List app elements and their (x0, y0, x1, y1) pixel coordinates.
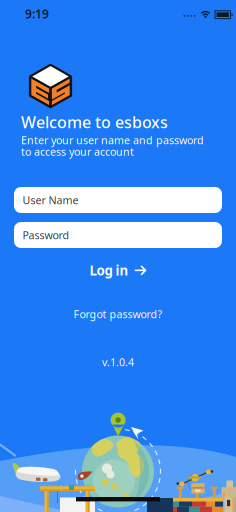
staticText: Forgot password? (73, 307, 162, 321)
staticText: User Name (22, 193, 78, 207)
staticText: v.1.0.4 (102, 355, 134, 369)
staticText: 9:19 (25, 6, 49, 22)
button[interactable]: Log in (0, 261, 236, 279)
staticText: Welcome to esboxs (21, 111, 168, 133)
button[interactable]: User Name (14, 187, 222, 213)
staticText: Log in (89, 261, 128, 279)
button[interactable]: Password (14, 222, 222, 248)
staticText: to access your account (21, 144, 134, 159)
staticText: Password (22, 228, 69, 242)
staticText: Enter your user name and password (21, 133, 204, 147)
button[interactable]: Forgot password? (0, 307, 236, 321)
